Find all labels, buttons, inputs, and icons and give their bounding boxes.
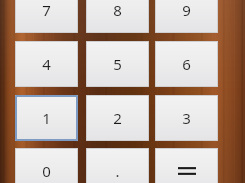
button[interactable]: 2 [86, 95, 149, 141]
staticText: 2 [113, 108, 122, 128]
button[interactable]: 8 [86, 0, 149, 33]
button[interactable]: 6 [155, 41, 218, 87]
button[interactable]: Decimal point [86, 148, 149, 183]
staticText: 5 [113, 54, 122, 74]
staticText: 9 [182, 0, 191, 20]
staticText: 1 [42, 108, 51, 128]
button[interactable]: 0 [15, 148, 78, 183]
staticText: 4 [42, 54, 51, 74]
button[interactable]: 1 [15, 95, 78, 141]
button[interactable]: 7 [15, 0, 78, 33]
button[interactable]: 3 [155, 95, 218, 141]
staticText: 8 [113, 0, 122, 20]
button[interactable]: Equals [155, 148, 218, 183]
staticText: 6 [182, 54, 191, 74]
staticText: 3 [182, 108, 191, 128]
button[interactable]: 5 [86, 41, 149, 87]
button[interactable]: 4 [15, 41, 78, 87]
button[interactable]: 9 [155, 0, 218, 33]
staticText: 7 [42, 0, 51, 20]
staticText: 0 [42, 161, 51, 181]
staticText: . [115, 161, 120, 181]
